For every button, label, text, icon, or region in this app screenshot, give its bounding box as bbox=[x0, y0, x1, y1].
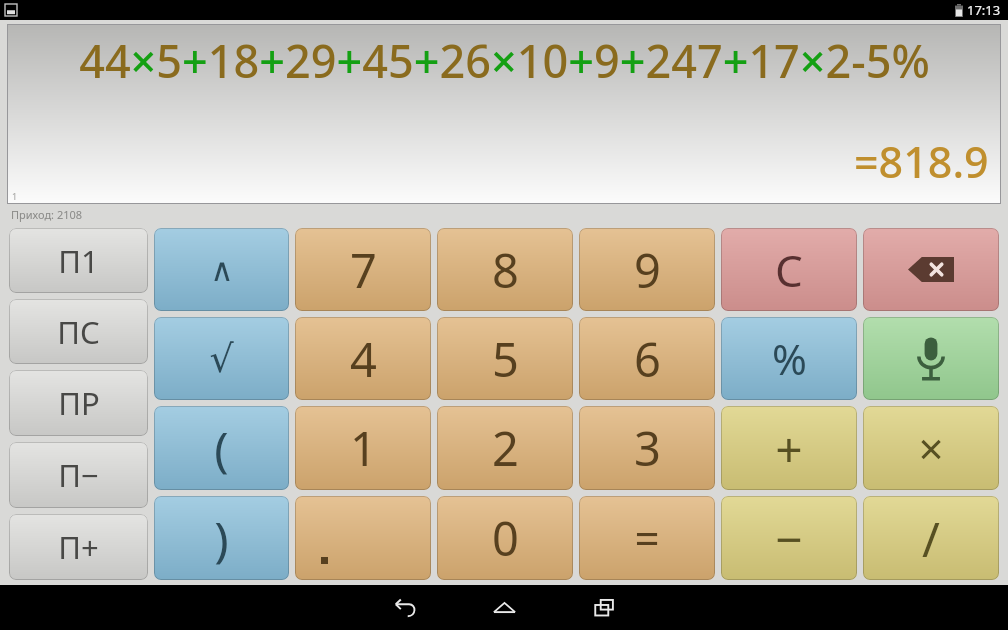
button[interactable] bbox=[295, 496, 431, 580]
staticText: / bbox=[922, 506, 940, 571]
staticText: 2 bbox=[492, 416, 519, 480]
button[interactable]: C bbox=[721, 228, 857, 311]
button[interactable]: 8 bbox=[437, 228, 573, 311]
button[interactable]: 0 bbox=[437, 496, 573, 580]
button[interactable]: 6 bbox=[579, 317, 715, 400]
staticText: П1 bbox=[58, 240, 99, 282]
button[interactable]: ПР bbox=[9, 370, 148, 436]
button[interactable]: ) bbox=[154, 496, 289, 580]
button[interactable]: Backspace bbox=[863, 228, 999, 311]
button[interactable]: × bbox=[863, 406, 999, 490]
staticText: 1 bbox=[12, 190, 18, 202]
button[interactable]: % bbox=[721, 317, 857, 400]
button[interactable]: ПС bbox=[9, 299, 148, 364]
button[interactable]: ∧ bbox=[154, 228, 289, 311]
staticText: = bbox=[634, 508, 660, 568]
button[interactable]: − bbox=[721, 496, 857, 580]
staticText: + bbox=[775, 416, 803, 481]
staticText: 6 bbox=[634, 327, 661, 391]
button[interactable]: Voice input bbox=[863, 317, 999, 400]
button[interactable]: Recents bbox=[554, 585, 654, 630]
button[interactable]: П1 bbox=[9, 228, 148, 293]
button[interactable]: √ bbox=[154, 317, 289, 400]
staticText: Приход: 2108 bbox=[11, 207, 83, 222]
staticText: 3 bbox=[634, 416, 661, 480]
staticText: 9 bbox=[634, 238, 661, 302]
staticText: % bbox=[772, 330, 807, 387]
staticText: 8 bbox=[492, 238, 519, 302]
button[interactable]: = bbox=[579, 496, 715, 580]
staticText: 44×5+18+29+45+26×10+9+247+17×2-5% bbox=[79, 30, 930, 91]
staticText: 4 bbox=[350, 327, 377, 391]
button[interactable]: + bbox=[721, 406, 857, 490]
staticText: 0 bbox=[492, 506, 519, 570]
staticText: 5 bbox=[492, 327, 519, 391]
button[interactable]: 7 bbox=[295, 228, 431, 311]
staticText: − bbox=[775, 506, 803, 571]
button[interactable]: 2 bbox=[437, 406, 573, 490]
button[interactable]: 1 bbox=[295, 406, 431, 490]
button[interactable]: Home bbox=[454, 585, 554, 630]
staticText: П+ bbox=[58, 526, 99, 568]
button[interactable]: П+ bbox=[9, 514, 148, 580]
staticText: ) bbox=[214, 506, 229, 571]
staticText: ( bbox=[214, 416, 229, 481]
button[interactable]: 3 bbox=[579, 406, 715, 490]
button[interactable]: 5 bbox=[437, 317, 573, 400]
button[interactable]: 4 bbox=[295, 317, 431, 400]
staticText: 17:13 bbox=[967, 1, 1001, 19]
button[interactable]: Back bbox=[354, 585, 454, 630]
button[interactable]: / bbox=[863, 496, 999, 580]
staticText: √ bbox=[209, 337, 234, 381]
button[interactable]: ( bbox=[154, 406, 289, 490]
button[interactable]: 9 bbox=[579, 228, 715, 311]
staticText: × bbox=[918, 418, 944, 478]
staticText: ПС bbox=[57, 311, 100, 353]
staticText: 1 bbox=[350, 416, 377, 480]
staticText: ∧ bbox=[210, 251, 234, 288]
staticText: ПР bbox=[58, 382, 100, 424]
staticText: C bbox=[775, 240, 803, 300]
staticText: 7 bbox=[350, 238, 377, 302]
button[interactable]: П− bbox=[9, 442, 148, 508]
staticText: =818.9 bbox=[854, 132, 989, 191]
staticText: П− bbox=[58, 454, 99, 496]
